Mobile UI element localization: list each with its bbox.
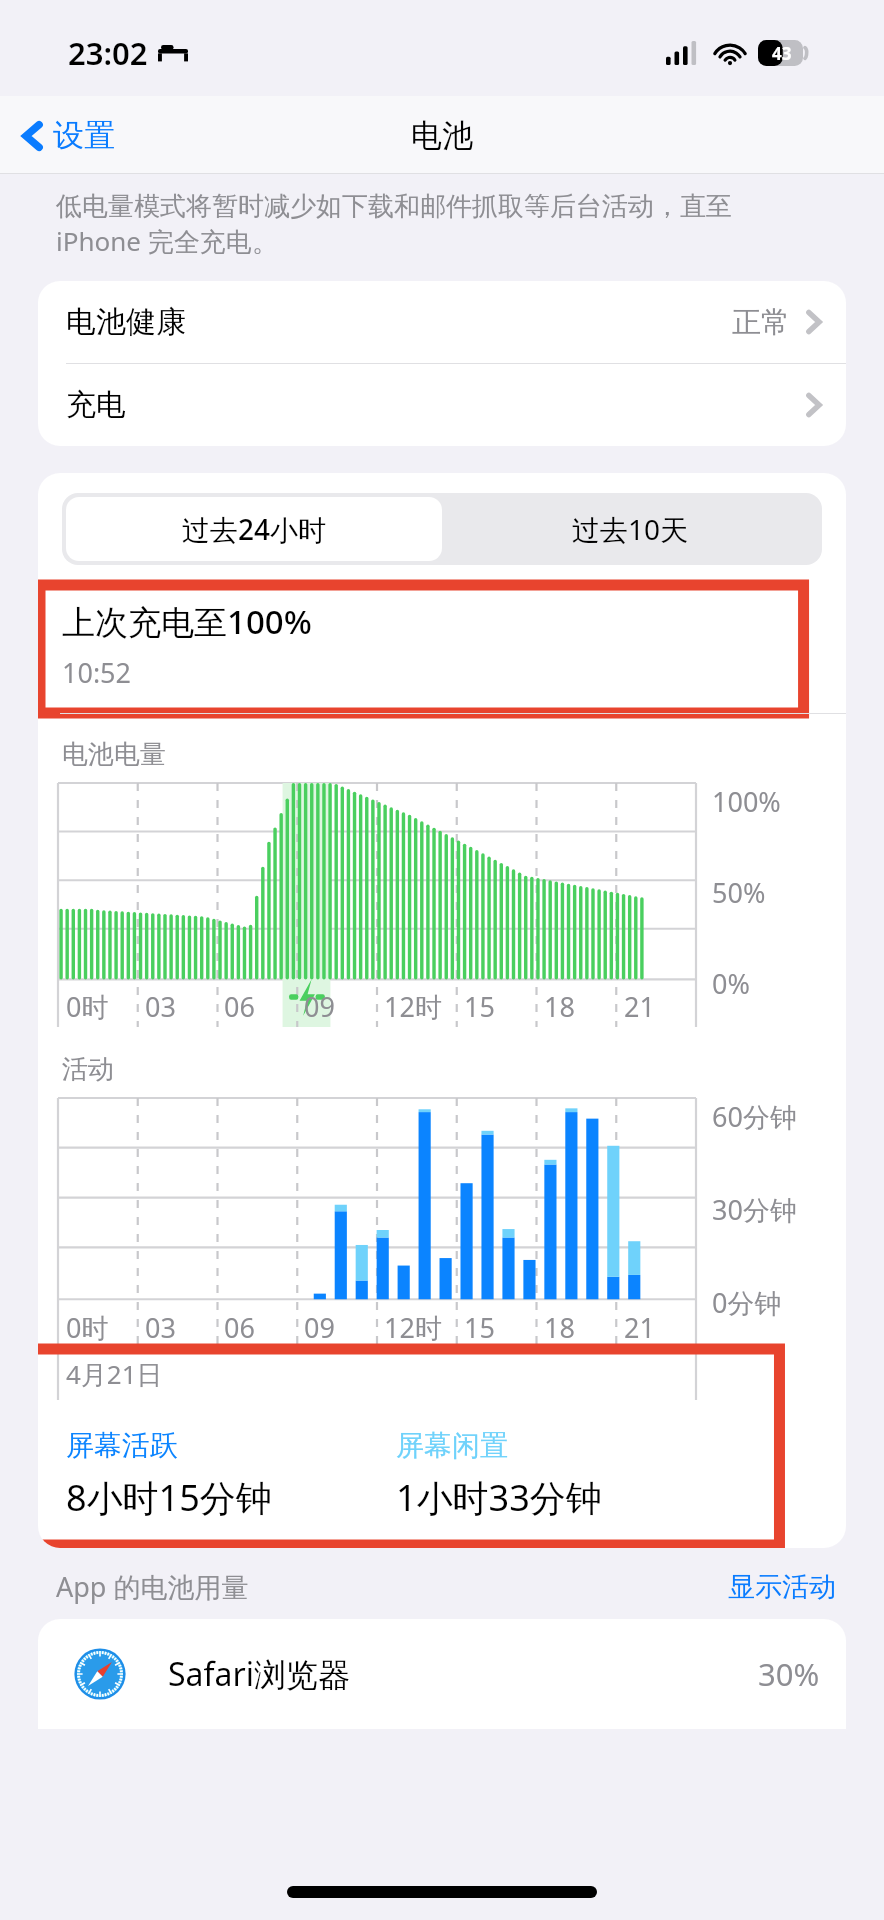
staticText: 06 xyxy=(224,988,255,1025)
staticText: 15 xyxy=(464,988,495,1025)
staticText: 21 xyxy=(624,1309,655,1346)
staticText: 屏幕闲置 xyxy=(396,1428,508,1463)
staticText: 0% xyxy=(712,965,750,1002)
staticText: 12时 xyxy=(384,988,442,1025)
button[interactable]: Safari浏览器 xyxy=(38,1619,846,1729)
staticText: iPhone 完全充电。 xyxy=(56,223,278,259)
staticText: 15 xyxy=(464,1309,495,1346)
staticText: 100% xyxy=(712,783,781,820)
staticText: 18 xyxy=(544,988,575,1025)
staticText: 60分钟 xyxy=(712,1098,797,1135)
staticText: 4月21日 xyxy=(66,1356,163,1392)
staticText: 30% xyxy=(758,1653,820,1695)
staticText: 正常 xyxy=(732,304,790,341)
staticText: 设置 xyxy=(53,116,115,155)
staticText: 03 xyxy=(145,1309,176,1346)
staticText: 过去10天 xyxy=(572,510,689,548)
staticText: 显示活动 xyxy=(728,1570,836,1604)
staticText: 活动 xyxy=(62,1053,114,1086)
staticText: 低电量模式将暂时减少如下载和邮件抓取等后台活动，直至 xyxy=(56,190,732,223)
staticText: 03 xyxy=(145,988,176,1025)
staticText: 电池 xyxy=(411,116,473,155)
staticText: 上次充电至100% xyxy=(62,599,312,644)
staticText: 1小时33分钟 xyxy=(396,1473,602,1522)
staticText: 电池健康 xyxy=(66,303,186,341)
staticText: 30分钟 xyxy=(712,1191,797,1228)
staticText: 电池电量 xyxy=(62,738,166,771)
staticText: 09 xyxy=(304,988,335,1025)
staticText: 09 xyxy=(304,1309,335,1346)
staticText: 屏幕活跃 xyxy=(66,1428,178,1463)
staticText: 充电 xyxy=(66,386,126,424)
staticText: 23:02 xyxy=(68,32,148,74)
staticText: 0时 xyxy=(66,988,109,1025)
staticText: 21 xyxy=(624,988,655,1025)
button[interactable]: 过去10天 xyxy=(442,497,818,561)
button[interactable]: 过去24小时 xyxy=(66,497,442,561)
staticText: 0时 xyxy=(66,1309,109,1346)
staticText: 0分钟 xyxy=(712,1284,782,1321)
button[interactable]: 设置 xyxy=(0,108,129,163)
staticText: 06 xyxy=(224,1309,255,1346)
staticText: 50% xyxy=(712,874,766,911)
staticText: 12时 xyxy=(384,1309,442,1346)
staticText: App 的电池用量 xyxy=(56,1568,249,1605)
staticText: 18 xyxy=(544,1309,575,1346)
staticText: 过去24小时 xyxy=(182,510,327,548)
button[interactable]: 电池健康 xyxy=(38,281,846,364)
staticText: Safari浏览器 xyxy=(168,1652,350,1696)
button[interactable]: 充电 xyxy=(38,364,846,446)
staticText: 43 xyxy=(772,42,792,65)
button[interactable]: 显示活动 xyxy=(728,1570,836,1604)
staticText: 8小时15分钟 xyxy=(66,1473,272,1522)
staticText: 10:52 xyxy=(62,654,132,691)
